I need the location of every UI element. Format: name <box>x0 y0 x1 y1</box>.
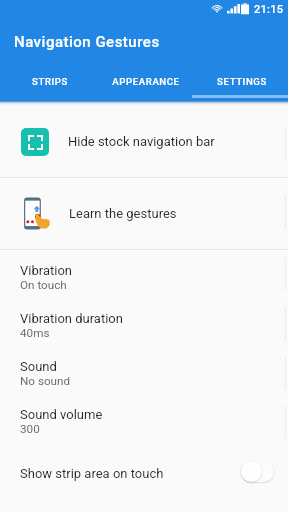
staticText: APPEARANCE <box>112 76 180 87</box>
staticText: Show strip area on touch <box>20 466 243 481</box>
staticText: SETTINGS <box>217 76 267 87</box>
button[interactable]: Sound volume <box>0 397 288 445</box>
staticText: Learn the gestures <box>69 206 177 221</box>
button[interactable]: Vibration <box>0 253 288 301</box>
button[interactable]: Vibration duration <box>0 301 288 349</box>
staticText: 21:15 <box>254 3 284 16</box>
staticText: 300 <box>20 422 40 436</box>
button[interactable]: Hide stock navigation bar <box>0 106 288 177</box>
staticText: Vibration duration <box>20 311 123 326</box>
staticText: Sound volume <box>20 407 103 422</box>
button[interactable]: STRIPS <box>2 62 98 100</box>
button[interactable]: SETTINGS <box>194 62 288 100</box>
button[interactable]: APPEARANCE <box>98 62 194 100</box>
staticText: No sound <box>20 374 71 388</box>
button[interactable]: Learn the gestures <box>0 178 288 249</box>
staticText: Navigation Gestures <box>14 33 160 51</box>
button[interactable]: Sound <box>0 349 288 397</box>
staticText: Vibration <box>20 263 72 278</box>
staticText: Sound <box>20 359 57 374</box>
staticText: STRIPS <box>32 76 68 87</box>
staticText: Hide stock navigation bar <box>68 134 215 149</box>
staticText: On touch <box>20 278 67 292</box>
button[interactable]: Show strip area on touch <box>0 445 288 501</box>
staticText: 40ms <box>20 326 50 340</box>
